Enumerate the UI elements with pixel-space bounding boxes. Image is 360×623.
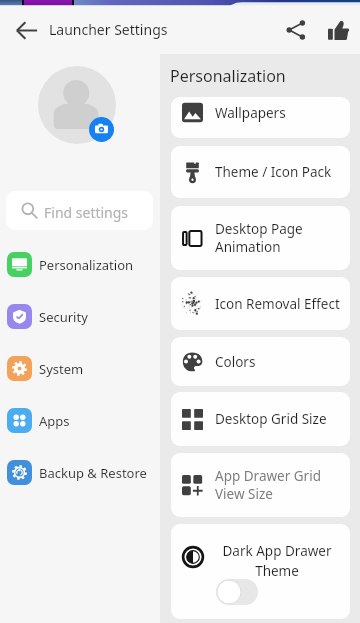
staticText: Desktop Page Animation (215, 220, 303, 256)
button[interactable]: Find settings (6, 191, 153, 230)
button[interactable]: Apps (0, 395, 160, 446)
button[interactable]: Dark App Drawer Theme (171, 524, 350, 619)
staticText: Dark App Drawer Theme (213, 542, 341, 580)
button[interactable]: Rate this app (316, 8, 360, 52)
button[interactable]: Change profile photo (89, 117, 114, 142)
button[interactable]: Theme / Icon Pack (171, 146, 350, 198)
button[interactable]: Colors (171, 337, 350, 386)
staticText: Security (39, 308, 88, 326)
staticText: Desktop Grid Size (215, 410, 327, 428)
staticText: Find settings (44, 203, 129, 222)
button[interactable]: Backup & Restore (0, 447, 160, 498)
button[interactable]: Wallpapers (171, 97, 350, 138)
staticText: Icon Removal Effect (215, 295, 340, 313)
staticText: Personalization (170, 65, 286, 87)
staticText: Backup & Restore (39, 464, 147, 482)
button[interactable]: Desktop Grid Size (171, 392, 350, 446)
staticText: Apps (39, 412, 70, 430)
button[interactable]: Toggle dark app drawer theme (216, 579, 258, 605)
button[interactable]: Personalization (0, 239, 160, 290)
button[interactable]: App Drawer Grid View Size (171, 453, 350, 517)
staticText: Colors (215, 353, 256, 371)
button[interactable]: Desktop Page Animation (171, 206, 350, 270)
button[interactable]: Icon Removal Effect (171, 277, 350, 330)
staticText: App Drawer Grid View Size (215, 467, 321, 503)
button[interactable]: Security (0, 291, 160, 342)
staticText: Launcher Settings (49, 20, 168, 39)
button[interactable]: System (0, 343, 160, 394)
staticText: Personalization (39, 256, 134, 274)
staticText: Theme / Icon Pack (215, 163, 332, 181)
staticText: System (39, 360, 84, 378)
button[interactable]: Share (274, 8, 318, 52)
staticText: Wallpapers (215, 104, 286, 122)
button[interactable]: Back (4, 8, 48, 52)
